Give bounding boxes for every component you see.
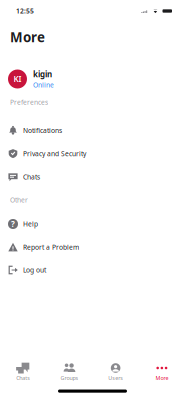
staticText: Notifications xyxy=(23,126,62,135)
staticText: Privacy and Security xyxy=(23,149,86,158)
button[interactable]: Log out xyxy=(0,258,185,282)
button[interactable]: Users xyxy=(92,362,139,380)
staticText: Users xyxy=(108,374,123,382)
staticText: Other xyxy=(10,195,28,204)
button[interactable]: Chats xyxy=(0,362,46,380)
staticText: Chats xyxy=(23,172,40,181)
staticText: kigin xyxy=(33,69,52,79)
staticText: Preferences xyxy=(10,98,48,107)
staticText: Groups xyxy=(60,374,78,382)
button[interactable]: ? xyxy=(0,212,185,236)
staticText: Report a Problem xyxy=(23,243,79,252)
button[interactable]: Notifications xyxy=(0,119,185,142)
staticText: Help xyxy=(23,220,38,228)
button[interactable]: KI xyxy=(0,67,185,91)
staticText: ? xyxy=(11,219,15,229)
staticText: 12:55 xyxy=(16,7,34,15)
staticText: More xyxy=(10,28,45,46)
staticText: Chats xyxy=(16,374,30,382)
button[interactable]: Report a Problem xyxy=(0,235,185,259)
staticText: KI xyxy=(13,74,21,84)
button[interactable]: Groups xyxy=(46,362,92,380)
staticText: Online xyxy=(33,80,54,89)
button[interactable]: Privacy and Security xyxy=(0,142,185,165)
button[interactable]: More xyxy=(139,362,185,380)
button[interactable]: Chats xyxy=(0,165,185,188)
staticText: Log out xyxy=(23,266,46,274)
staticText: More xyxy=(155,374,168,382)
